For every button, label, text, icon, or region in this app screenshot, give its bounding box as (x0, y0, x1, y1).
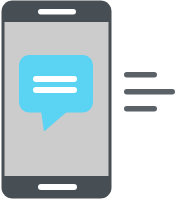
button[interactable]: Phone with chat message (0, 0, 175, 200)
